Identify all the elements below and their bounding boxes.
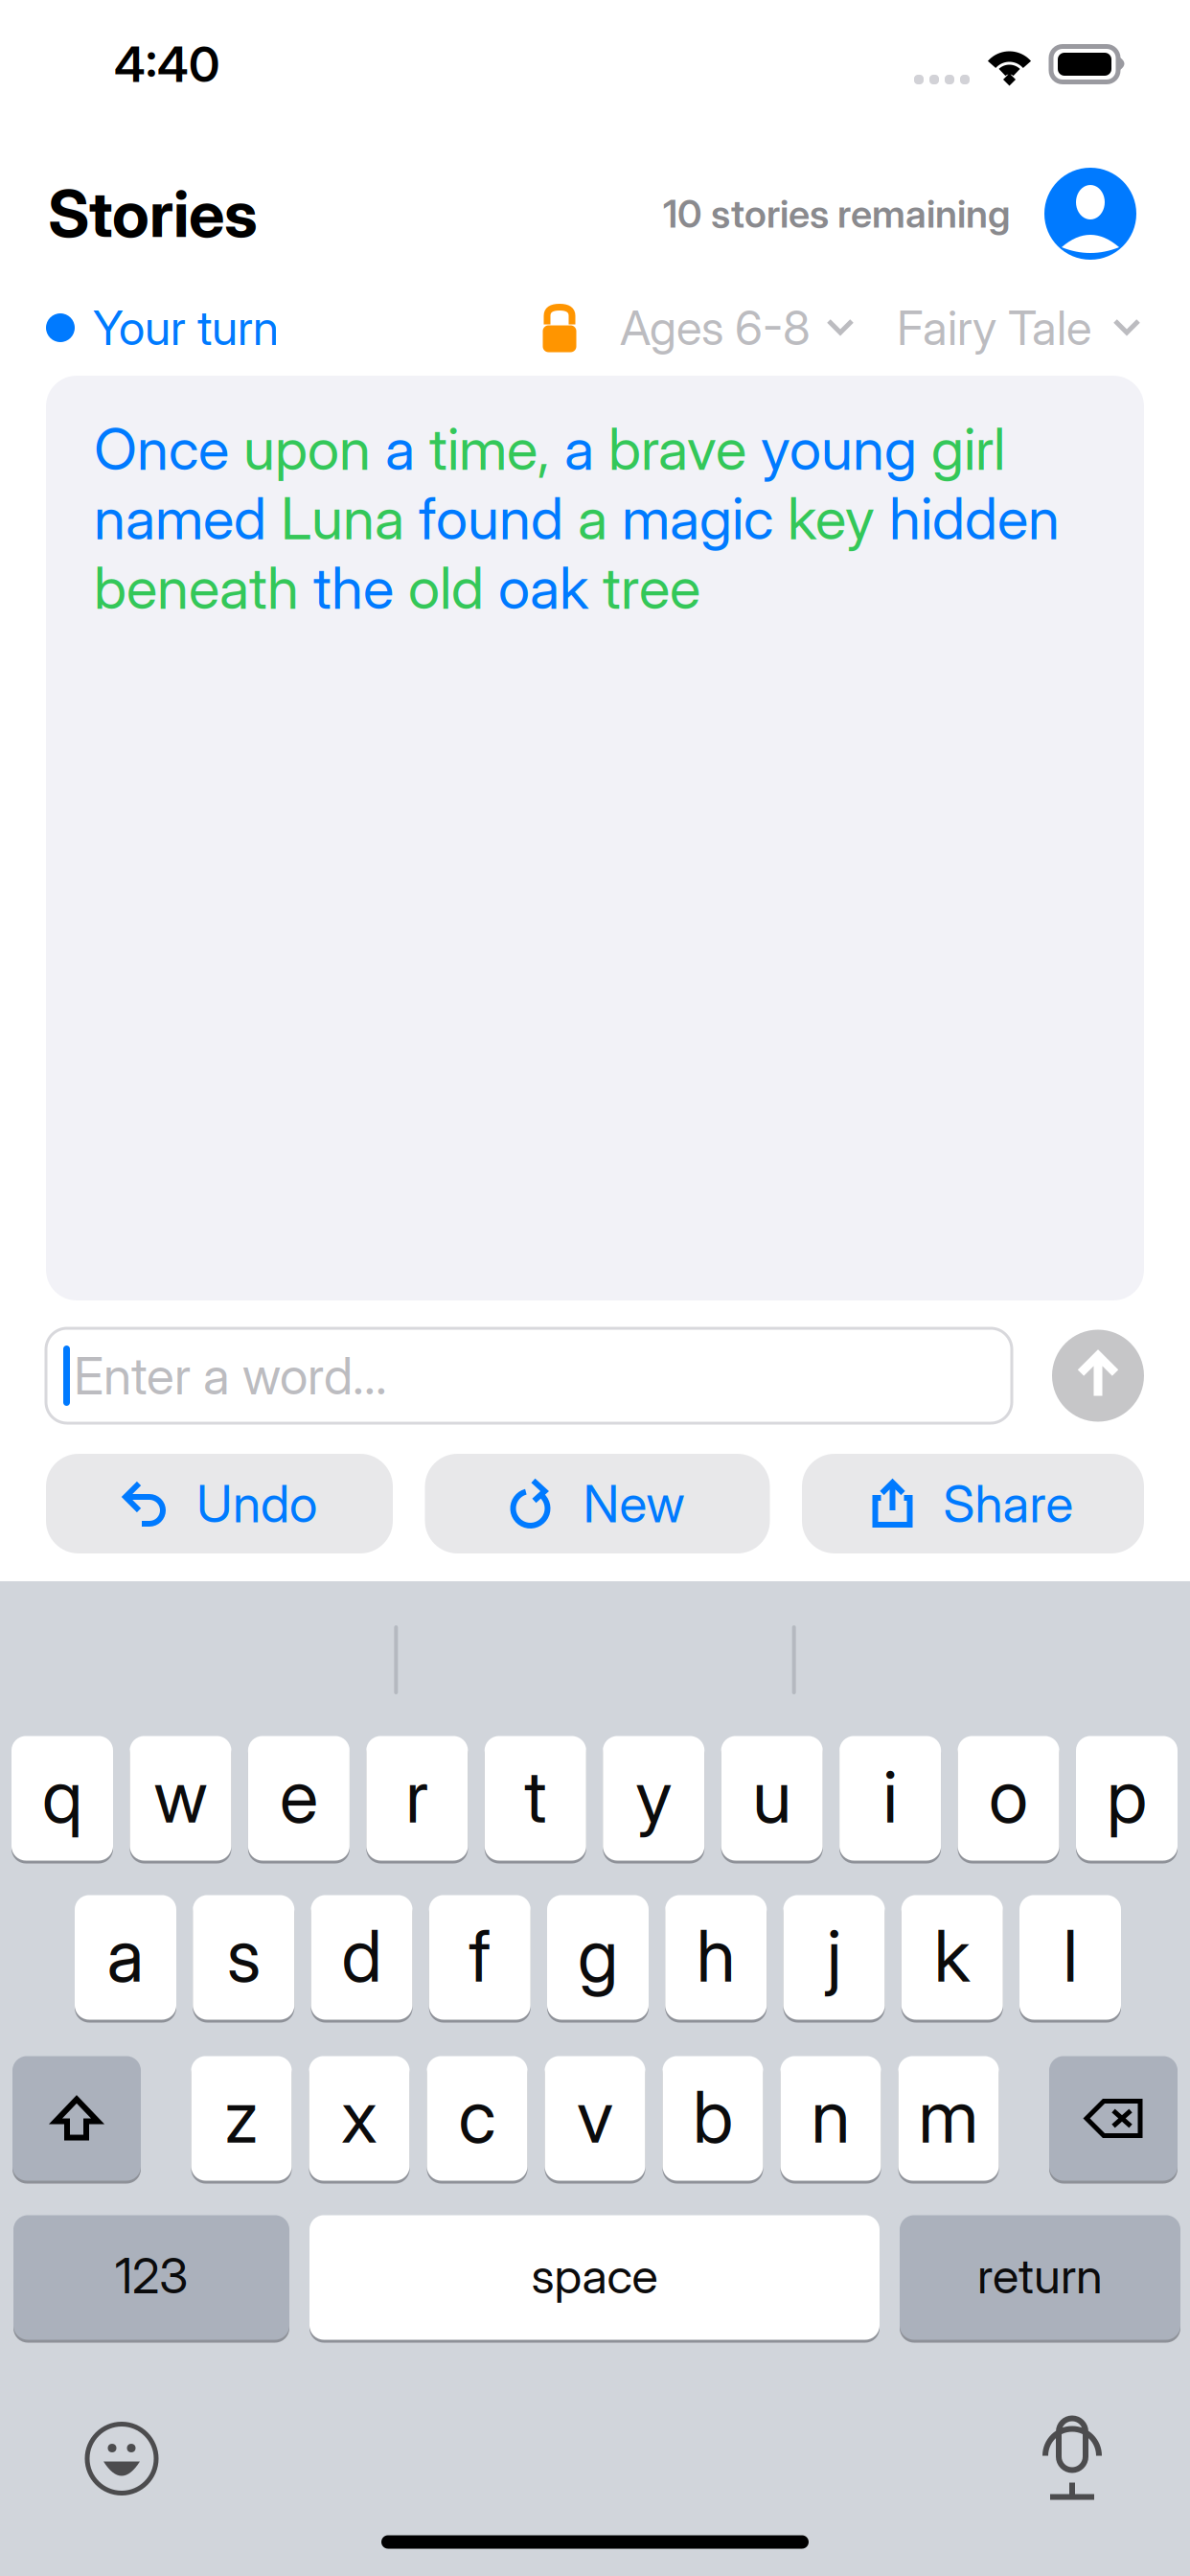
staticText: return bbox=[977, 2246, 1103, 2305]
button[interactable]: space bbox=[309, 2215, 880, 2340]
button[interactable]: h bbox=[665, 1895, 767, 2020]
staticText: o bbox=[989, 1753, 1028, 1840]
button[interactable]: p bbox=[1076, 1736, 1178, 1861]
button[interactable]: Emoji bbox=[83, 2420, 160, 2497]
button[interactable]: return bbox=[900, 2215, 1180, 2340]
staticText: b bbox=[693, 2073, 733, 2160]
staticText: Fairy Tale bbox=[897, 299, 1091, 356]
button[interactable]: s bbox=[193, 1895, 294, 2020]
button[interactable]: f bbox=[429, 1895, 531, 2020]
staticText: 4:40 bbox=[114, 35, 219, 94]
staticText: e bbox=[280, 1753, 318, 1840]
staticText: f bbox=[469, 1912, 491, 1999]
staticText: y bbox=[635, 1753, 672, 1840]
button[interactable]: Delete bbox=[1049, 2056, 1178, 2181]
button[interactable]: u bbox=[721, 1736, 823, 1861]
staticText: Stories bbox=[48, 175, 258, 252]
staticText: g bbox=[578, 1912, 618, 1999]
staticText: p bbox=[1107, 1753, 1147, 1840]
button[interactable]: Undo bbox=[46, 1454, 393, 1553]
staticText: Share bbox=[943, 1473, 1074, 1534]
button[interactable]: j bbox=[783, 1895, 885, 2020]
button[interactable]: Your turn bbox=[46, 299, 279, 356]
button[interactable]: c bbox=[427, 2056, 527, 2181]
button[interactable]: New bbox=[425, 1454, 770, 1553]
button[interactable]: l bbox=[1019, 1895, 1121, 2020]
staticText: r bbox=[406, 1753, 429, 1840]
staticText: m bbox=[918, 2073, 979, 2160]
button[interactable]: m bbox=[898, 2056, 999, 2181]
staticText: n bbox=[811, 2073, 850, 2160]
button[interactable]: Ages 6-8 bbox=[620, 299, 854, 356]
button[interactable]: n bbox=[780, 2056, 881, 2181]
staticText: u bbox=[752, 1753, 792, 1840]
staticText: w bbox=[154, 1753, 207, 1840]
button[interactable]: i bbox=[839, 1736, 941, 1861]
button[interactable]: d bbox=[311, 1895, 412, 2020]
button[interactable]: z bbox=[191, 2056, 292, 2181]
staticText: q bbox=[42, 1753, 82, 1840]
button[interactable]: Account bbox=[1044, 168, 1136, 260]
staticText: k bbox=[934, 1912, 970, 1999]
staticText: Undo bbox=[196, 1473, 317, 1534]
staticText: h bbox=[696, 1912, 736, 1999]
button[interactable]: 123 bbox=[13, 2215, 289, 2340]
staticText: t bbox=[524, 1753, 546, 1840]
staticText: space bbox=[531, 2246, 658, 2305]
staticText: c bbox=[458, 2073, 496, 2160]
staticText: x bbox=[341, 2073, 378, 2160]
button[interactable]: k bbox=[901, 1895, 1003, 2020]
staticText: j bbox=[827, 1912, 841, 1999]
button[interactable]: Share bbox=[802, 1454, 1144, 1553]
button[interactable]: Shift bbox=[12, 2056, 141, 2181]
staticText: a bbox=[107, 1912, 144, 1999]
button[interactable]: e bbox=[248, 1736, 350, 1861]
staticText: s bbox=[227, 1912, 260, 1999]
button[interactable]: g bbox=[547, 1895, 649, 2020]
staticText: v bbox=[577, 2073, 613, 2160]
button[interactable]: y bbox=[603, 1736, 704, 1861]
button[interactable]: q bbox=[11, 1736, 113, 1861]
button[interactable]: w bbox=[130, 1736, 231, 1861]
staticText: d bbox=[342, 1912, 382, 1999]
staticText: i bbox=[883, 1753, 897, 1840]
staticText: z bbox=[224, 2073, 259, 2160]
button[interactable]: r bbox=[366, 1736, 468, 1861]
button[interactable]: a bbox=[75, 1895, 176, 2020]
staticText: Ages 6-8 bbox=[620, 299, 811, 356]
staticText: Your turn bbox=[93, 299, 279, 356]
staticText: New bbox=[583, 1473, 685, 1534]
button[interactable]: t bbox=[485, 1736, 586, 1861]
staticText: 10 stories remaining bbox=[663, 191, 1010, 237]
staticText: Once upon a time, a brave young girl nam… bbox=[94, 414, 1060, 623]
button[interactable]: x bbox=[309, 2056, 410, 2181]
button[interactable]: Send bbox=[1052, 1330, 1144, 1422]
button[interactable]: Dictate bbox=[1042, 2415, 1102, 2502]
button[interactable]: o bbox=[958, 1736, 1059, 1861]
staticText: Enter a word... bbox=[74, 1345, 387, 1407]
staticText: l bbox=[1063, 1912, 1077, 1999]
button[interactable]: v bbox=[545, 2056, 645, 2181]
staticText: 123 bbox=[115, 2246, 188, 2305]
button[interactable]: b bbox=[663, 2056, 763, 2181]
button[interactable]: Fairy Tale bbox=[897, 299, 1140, 356]
